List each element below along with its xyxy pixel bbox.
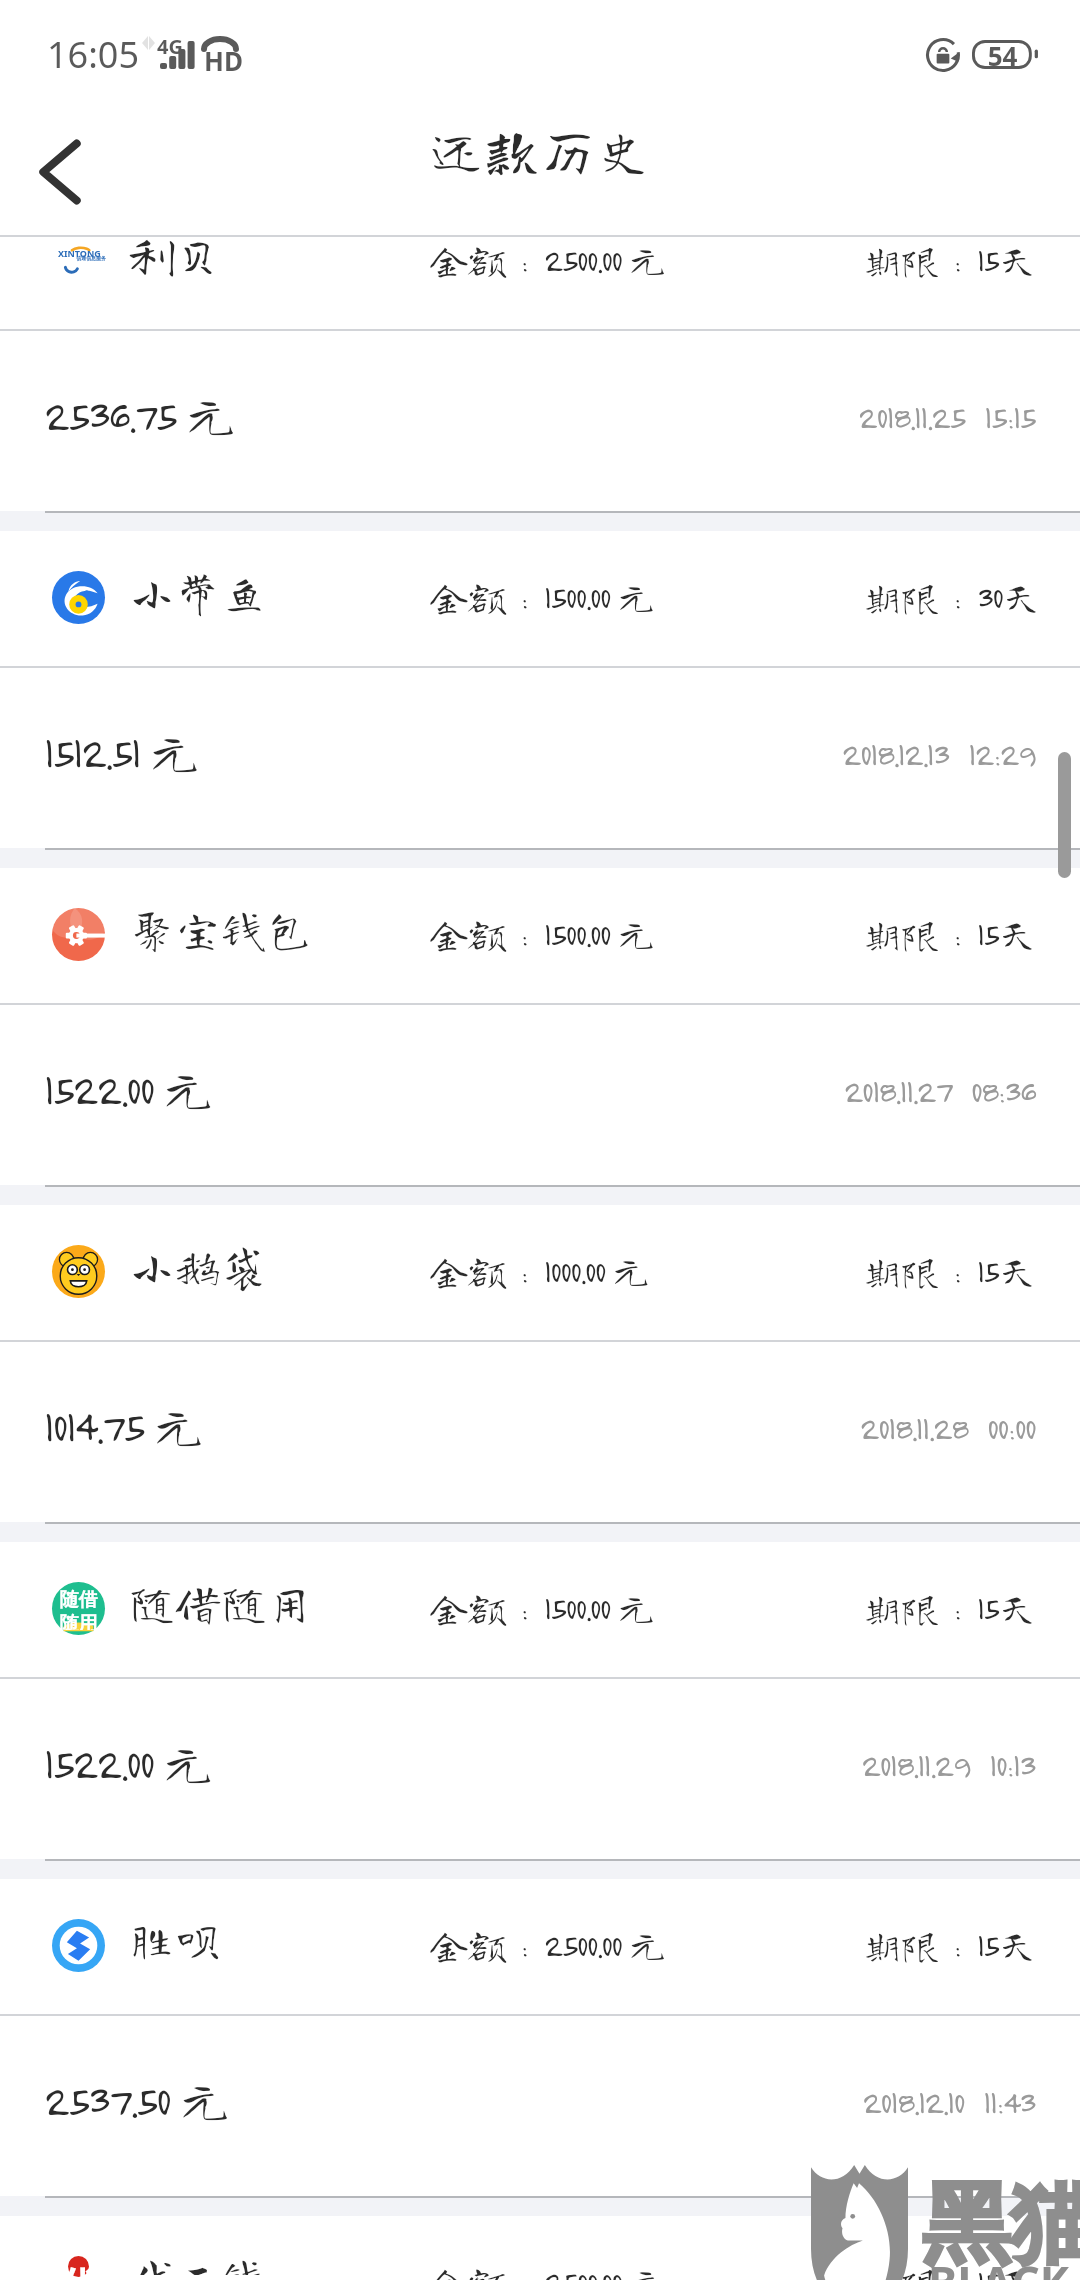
staticText: 1522.00 元 xyxy=(44,1737,215,1788)
staticText: 1522.00 元 xyxy=(44,1063,215,1114)
staticText: BLACK CAT xyxy=(928,2252,1080,2280)
button[interactable]: 随借 xyxy=(0,1542,1080,1677)
staticText: 金额：1500.00 元 xyxy=(430,578,656,616)
staticText: 期限：15天 xyxy=(863,2263,1037,2280)
staticText: 54 xyxy=(974,38,1031,73)
staticText: 2536.75 元 xyxy=(44,389,237,440)
staticText: 1512.51 元 xyxy=(44,726,201,777)
staticText: 金额：2500.00 元 xyxy=(430,241,667,279)
staticText: 2537.50 元 xyxy=(44,2074,231,2125)
staticText: 利贝 xyxy=(129,237,221,278)
button[interactable]: 2536.75 元 xyxy=(0,331,1080,511)
button[interactable]: 1522.00 元 xyxy=(0,1005,1080,1185)
staticText: 随借 xyxy=(56,1588,101,1612)
staticText: 金额：2500.00 元 xyxy=(430,2263,667,2280)
button[interactable]: 小鹅袋 xyxy=(0,1205,1080,1340)
staticText: 期限：15天 xyxy=(863,915,1037,953)
button[interactable]: 1512.51 元 xyxy=(0,668,1080,848)
staticText: 1014.75 元 xyxy=(44,1400,205,1451)
staticText: 代 xyxy=(52,2262,105,2280)
staticText: 2018.11.27 08:36 xyxy=(500,1071,1035,1110)
staticText: 期限：15天 xyxy=(863,241,1037,279)
staticText: 期限：30天 xyxy=(863,578,1041,616)
staticText: 黑猫 xyxy=(922,2169,1080,2280)
button[interactable]: XINTONG xyxy=(0,237,1080,329)
staticText: 随借随用 xyxy=(129,1580,313,1626)
staticText: 金额：2500.00 元 xyxy=(430,1926,667,1964)
staticText: 小带鱼 xyxy=(129,569,267,615)
staticText: 金额：1000.00 元 xyxy=(430,1252,651,1290)
staticText: 2018.12.13 12:29 xyxy=(500,734,1035,773)
button[interactable]: 1014.75 元 xyxy=(0,1342,1080,1522)
button[interactable]: 代 xyxy=(0,2216,1080,2237)
staticText: HD xyxy=(204,43,243,78)
staticText: XINTONG xyxy=(58,247,101,259)
staticText: 期限：15天 xyxy=(863,1589,1037,1627)
button[interactable]: 1522.00 元 xyxy=(0,1679,1080,1859)
staticText: 2018.12.10 11:43 xyxy=(500,2082,1035,2121)
button[interactable]: 2537.50 元 xyxy=(0,2016,1080,2196)
staticText: 胜呗 xyxy=(129,1917,221,1963)
staticText: 代工钱 xyxy=(129,2254,267,2275)
staticText: 随用 xyxy=(56,1612,101,1630)
staticText: 期限：15天 xyxy=(863,1252,1037,1290)
staticText: 聚宝钱包 xyxy=(129,906,313,952)
staticText: 金额：1500.00 元 xyxy=(430,1589,656,1627)
staticText: 2018.11.29 10:13 xyxy=(500,1745,1035,1784)
staticText: 还款历史 xyxy=(0,122,1080,178)
button[interactable]: 聚宝钱包 xyxy=(0,868,1080,1003)
staticText: 2018.11.25 15:15 xyxy=(500,397,1035,436)
staticText: 金额：1500.00 元 xyxy=(430,915,656,953)
staticText: 16:05 xyxy=(47,30,140,79)
staticText: 4G xyxy=(157,33,183,60)
button[interactable]: Back xyxy=(10,122,110,222)
button[interactable]: 小带鱼 xyxy=(0,531,1080,666)
staticText: 2018.11.28 00:00 xyxy=(500,1408,1035,1447)
button[interactable]: 胜呗 xyxy=(0,1879,1080,2014)
staticText: 小鹅袋 xyxy=(129,1243,267,1289)
staticText: 期限：15天 xyxy=(863,1926,1037,1964)
staticText: 信通信息服务 xyxy=(76,255,106,261)
